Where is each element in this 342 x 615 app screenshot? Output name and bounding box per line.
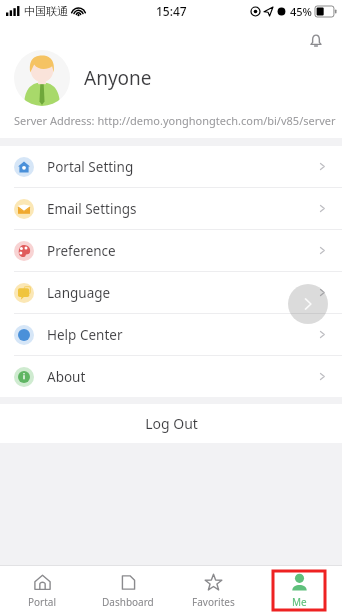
- button[interactable]: Portal Setting: [0, 146, 342, 187]
- button[interactable]: Preference: [0, 230, 342, 271]
- button[interactable]: About: [0, 356, 342, 397]
- staticText: Me: [292, 595, 307, 609]
- staticText: Preference: [47, 242, 317, 260]
- staticText: 中国联通: [24, 4, 68, 18]
- staticText: Portal Setting: [47, 158, 317, 176]
- staticText: Email Settings: [47, 200, 317, 218]
- staticText: Help Center: [47, 326, 317, 344]
- button[interactable]: Profile avatar: [14, 50, 70, 106]
- staticText: Dashboard: [102, 595, 154, 609]
- button[interactable]: Email Settings: [0, 188, 342, 229]
- staticText: Language: [47, 284, 317, 302]
- staticText: Anyone: [84, 65, 152, 91]
- staticText: Log Out: [145, 414, 198, 433]
- button[interactable]: Portal: [28, 573, 57, 609]
- staticText: Favorites: [192, 595, 235, 609]
- staticText: Server Address: http://demo.yonghongtech…: [14, 113, 336, 128]
- button[interactable]: Next: [288, 284, 328, 324]
- staticText: 15:47: [156, 3, 187, 19]
- button[interactable]: Favorites: [192, 573, 235, 609]
- staticText: About: [47, 368, 317, 386]
- button[interactable]: Me: [273, 571, 325, 610]
- button[interactable]: Dashboard: [102, 573, 154, 609]
- staticText: 45%: [290, 4, 312, 19]
- button[interactable]: Log Out: [0, 404, 342, 443]
- button[interactable]: Notifications: [300, 25, 332, 57]
- button[interactable]: Help Center: [0, 314, 342, 355]
- staticText: Portal: [28, 595, 57, 609]
- button[interactable]: Language: [0, 272, 342, 313]
